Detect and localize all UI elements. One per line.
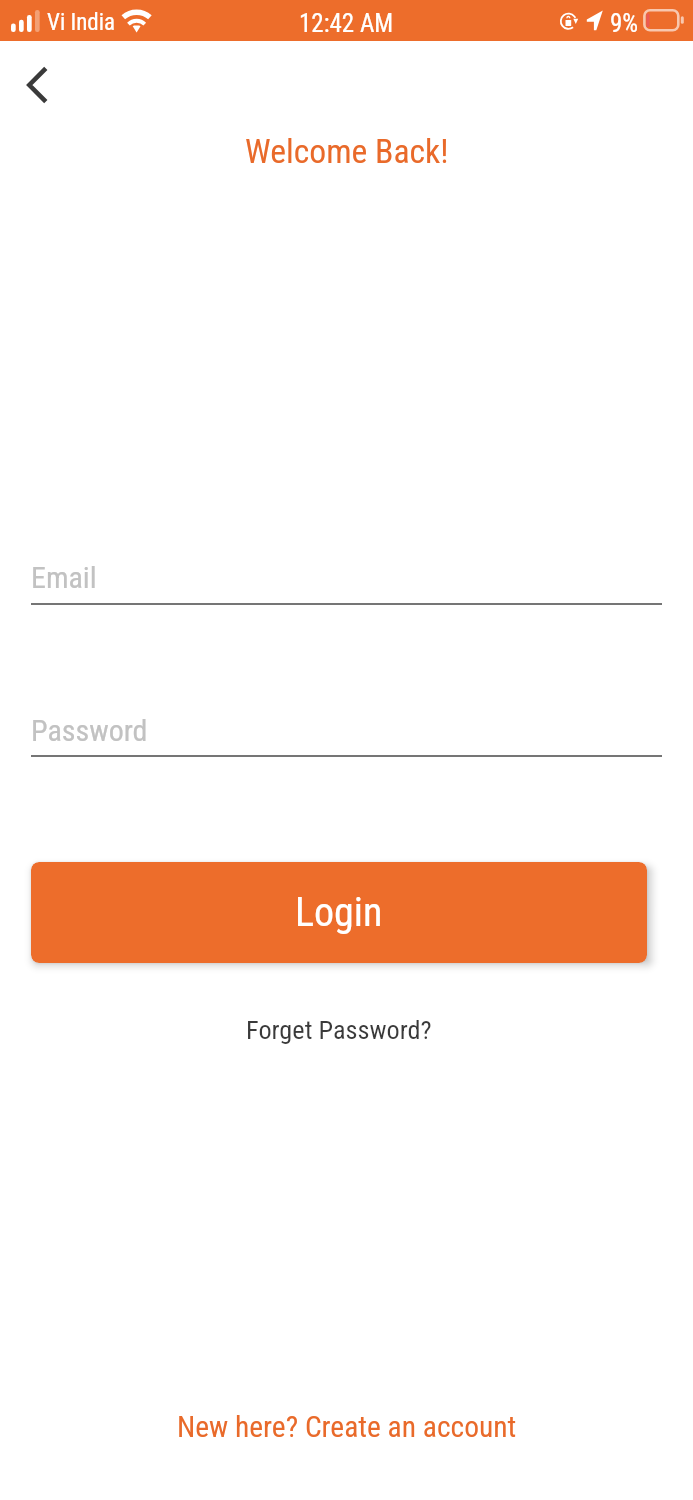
button[interactable]: Forget Password? [236, 1009, 442, 1052]
button[interactable]: Back [8, 57, 66, 113]
staticText: New here? Create an account [177, 1410, 517, 1445]
staticText: Welcome Back! [245, 132, 449, 171]
staticText: Forget Password? [246, 1015, 432, 1046]
staticText: 12:42 AM [299, 9, 394, 38]
staticText: 9% [610, 9, 639, 38]
button[interactable]: Login [31, 862, 647, 963]
button[interactable]: New here? Create an account [167, 1404, 527, 1451]
staticText: Login [295, 889, 383, 936]
staticText: Vi India [47, 9, 116, 36]
staticText: Password [31, 713, 148, 748]
staticText: Email [31, 560, 97, 595]
